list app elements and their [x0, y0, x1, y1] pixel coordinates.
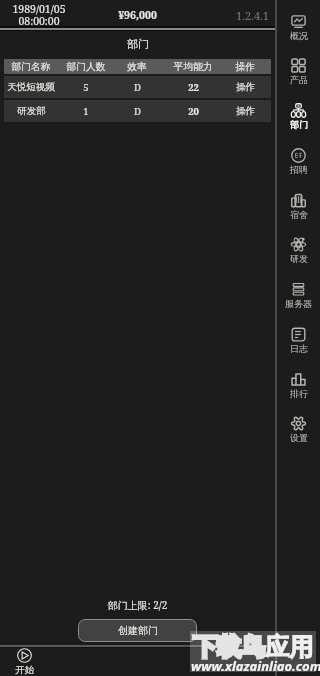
- staticText: 操作: [236, 81, 255, 93]
- staticText: 08:00:00: [18, 14, 60, 26]
- staticText: D: [134, 105, 141, 118]
- staticText: 研发部: [17, 105, 46, 117]
- staticText: ¥96,000: [118, 8, 157, 22]
- staticText: 设置: [290, 432, 308, 443]
- staticText: 22: [188, 81, 199, 94]
- staticText: 排行: [290, 388, 308, 399]
- button[interactable]: 部门: [277, 103, 320, 130]
- staticText: 开始: [15, 664, 34, 676]
- staticText: 部门: [290, 119, 308, 130]
- button[interactable]: 概况: [277, 14, 320, 41]
- staticText: 部门名称: [11, 61, 51, 73]
- staticText: 20: [188, 105, 199, 118]
- button[interactable]: 服务器: [277, 282, 320, 309]
- staticText: 部门上限: 2/2: [0, 598, 275, 612]
- button[interactable]: 日志: [277, 327, 320, 354]
- staticText: 平均能力: [173, 61, 213, 73]
- button[interactable]: 开始: [15, 648, 34, 676]
- staticText: 服务器: [285, 298, 312, 309]
- staticText: 1.2.4.1: [236, 8, 269, 23]
- button[interactable]: 研发: [277, 237, 320, 264]
- staticText: 宿舍: [290, 209, 308, 220]
- button[interactable]: 招聘: [277, 148, 320, 175]
- staticText: 创建部门: [118, 624, 158, 637]
- button[interactable]: 设置: [277, 416, 320, 443]
- staticText: 下载鸟: [193, 632, 265, 662]
- staticText: 招聘: [290, 164, 308, 175]
- staticText: 概况: [290, 30, 308, 41]
- staticText: 1: [83, 105, 89, 118]
- staticText: 天悦短视频: [7, 81, 55, 93]
- staticText: 日志: [290, 343, 308, 354]
- staticText: 研发: [290, 253, 308, 264]
- button[interactable]: 排行: [277, 372, 320, 399]
- staticText: 操作: [235, 61, 255, 73]
- staticText: www.xlazainliao.com: [191, 657, 320, 675]
- staticText: 效率: [127, 61, 147, 73]
- other: 开始: [17, 648, 32, 663]
- staticText: 5: [83, 81, 89, 94]
- staticText: 应用: [265, 632, 313, 662]
- staticText: 部门: [127, 37, 149, 51]
- button[interactable]: 创建部门: [78, 619, 197, 642]
- staticText: 操作: [236, 105, 255, 117]
- button[interactable]: 宿舍: [277, 193, 320, 220]
- staticText: 产品: [290, 74, 308, 85]
- staticText: D: [134, 81, 141, 94]
- staticText: 部门人数: [66, 61, 106, 73]
- button[interactable]: 产品: [277, 58, 320, 85]
- staticText: 1989/01/05: [12, 2, 66, 16]
